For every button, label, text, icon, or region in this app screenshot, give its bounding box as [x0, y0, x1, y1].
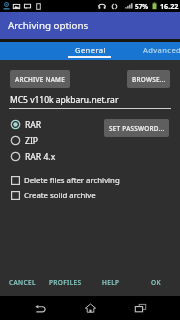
button[interactable]: PROFILES	[44, 274, 87, 290]
button[interactable]: RAR	[0, 116, 180, 132]
staticText: Advanced	[143, 45, 180, 55]
staticText: HELP	[102, 278, 120, 287]
button[interactable]: CANCEL	[4, 274, 41, 290]
staticText: RAR 4.x	[25, 151, 56, 163]
staticText: 57%	[135, 2, 149, 11]
staticText: BROWSE...	[132, 75, 166, 84]
staticText: CANCEL	[9, 278, 36, 287]
button[interactable]: BROWSE...	[127, 70, 170, 88]
button[interactable]: Advanced	[136, 42, 180, 60]
button[interactable]: Home	[65, 296, 115, 320]
button[interactable]: RAR 4.x	[0, 148, 180, 164]
button[interactable]: Delete files after archiving	[0, 173, 180, 187]
staticText: Delete files after archiving	[24, 175, 120, 186]
staticText: ARCHIVE NAME	[15, 75, 66, 84]
button[interactable]: Back	[15, 296, 65, 320]
button[interactable]: Recent apps	[115, 296, 165, 320]
button[interactable]: Create solid archive	[0, 188, 180, 202]
staticText: Create solid archive	[24, 190, 96, 201]
button[interactable]: HELP	[97, 274, 125, 290]
staticText: 16.22	[160, 1, 179, 11]
staticText: General	[75, 45, 106, 55]
button[interactable]: SET PASSWORD...	[104, 119, 169, 137]
staticText: SET PASSWORD...	[109, 124, 165, 133]
staticText: PROFILES	[49, 278, 82, 287]
staticText: MC5 v110k apkbaru.net.rar	[10, 94, 119, 106]
button[interactable]: General	[60, 42, 118, 60]
button[interactable]: ARCHIVE NAME	[10, 70, 70, 88]
staticText: OK	[151, 278, 161, 287]
staticText: RAR	[25, 119, 42, 131]
button[interactable]: ZIP	[0, 132, 180, 148]
button[interactable]: OK	[146, 274, 166, 290]
staticText: ZIP	[25, 135, 39, 147]
staticText: Archiving options	[8, 19, 89, 32]
